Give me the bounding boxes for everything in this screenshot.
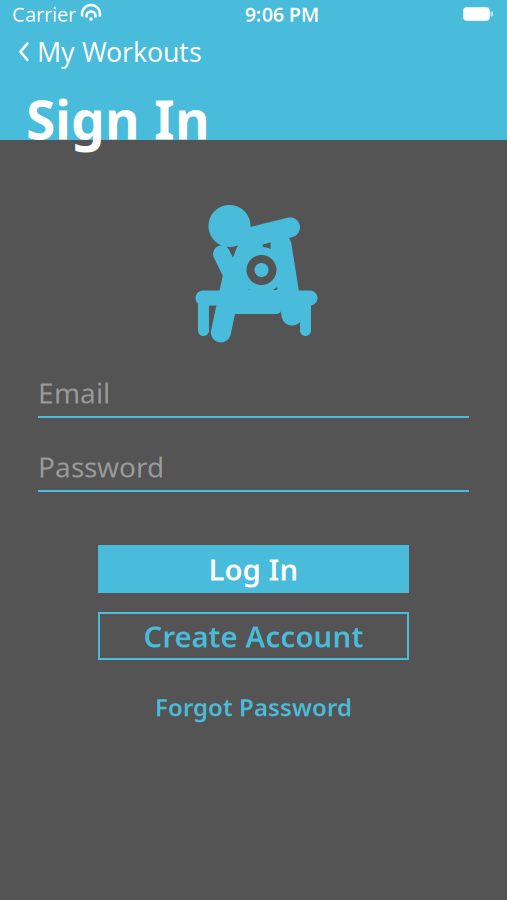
staticText: Carrier xyxy=(12,1,76,27)
staticText: Create Account xyxy=(143,616,363,655)
button[interactable]: My Workouts xyxy=(0,28,212,75)
button[interactable]: Log In xyxy=(98,545,409,593)
staticText: Password xyxy=(38,448,164,485)
staticText: 9:06 PM xyxy=(245,1,320,27)
staticText: Email xyxy=(38,374,110,411)
staticText: Sign In xyxy=(26,83,210,154)
staticText: Log In xyxy=(208,549,298,588)
button[interactable]: Create Account xyxy=(99,613,408,659)
button[interactable]: Forgot Password xyxy=(143,685,364,729)
staticText: Forgot Password xyxy=(155,691,352,723)
staticText: My Workouts xyxy=(37,34,202,69)
